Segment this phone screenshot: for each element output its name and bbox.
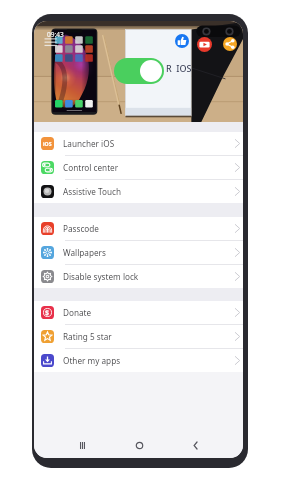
button[interactable]: Disable system lock (34, 265, 243, 288)
staticText: Control center (63, 162, 119, 173)
staticText: Launcher iOS (63, 138, 115, 149)
staticText: Donate (63, 307, 92, 318)
staticText: Assistive Touch (63, 186, 122, 197)
staticText: R IOS (166, 62, 192, 74)
staticText: Passcode (63, 223, 99, 234)
button[interactable]: Other my apps (34, 349, 243, 372)
button[interactable]: Back (186, 436, 204, 454)
staticText: iOS (43, 140, 52, 147)
staticText: 09:43 (47, 30, 64, 39)
button[interactable]: Home (130, 436, 148, 454)
button[interactable]: iOS (34, 132, 243, 155)
button[interactable]: Wallpapers (34, 241, 243, 264)
button[interactable]: $ (34, 301, 243, 324)
button[interactable]: Control center (34, 156, 243, 179)
staticText: $ (45, 308, 50, 318)
staticText: Wallpapers (63, 247, 106, 258)
staticText: Disable system lock (63, 271, 139, 282)
staticText: Rating 5 star (63, 331, 112, 342)
button[interactable]: Recent apps (73, 436, 91, 454)
button[interactable]: Passcode (34, 217, 243, 240)
button[interactable]: Assistive Touch (34, 180, 243, 203)
staticText: Other my apps (63, 355, 121, 366)
button[interactable]: Rating 5 star (34, 325, 243, 348)
